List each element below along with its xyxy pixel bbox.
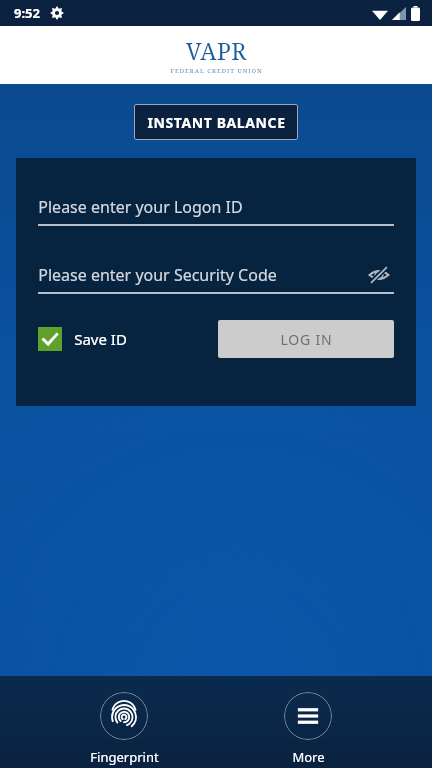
staticText: Please enter your Security Code (38, 264, 277, 286)
button[interactable]: Show security code (364, 260, 394, 290)
staticText: VAPR (186, 35, 247, 66)
staticText: FEDERAL CREDIT UNION (170, 67, 263, 75)
staticText: INSTANT BALANCE (147, 113, 286, 132)
button[interactable]: INSTANT BALANCE (134, 104, 298, 140)
staticText: 9:52 (14, 4, 40, 22)
staticText: Fingerprint (90, 748, 159, 766)
button[interactable]: Please enter your Security Code (38, 264, 394, 294)
button[interactable]: LOG IN (218, 320, 394, 358)
staticText: More (292, 748, 325, 766)
button[interactable]: Fingerprint (64, 690, 184, 768)
staticText: Please enter your Logon ID (38, 196, 243, 218)
staticText: Save ID (74, 329, 127, 349)
button[interactable]: Please enter your Logon ID (38, 196, 394, 226)
staticText: LOG IN (280, 330, 333, 349)
button[interactable]: Save ID (38, 327, 127, 351)
button[interactable]: More (248, 690, 368, 768)
